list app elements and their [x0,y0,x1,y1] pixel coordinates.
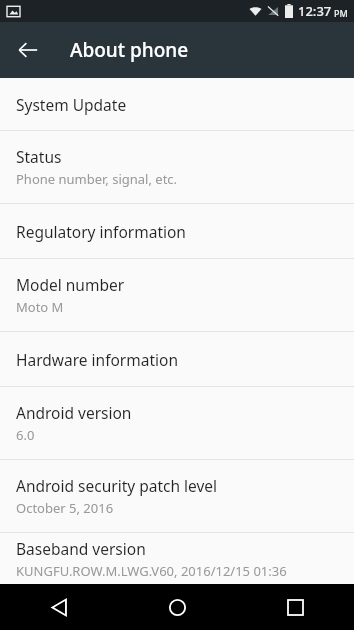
button[interactable]: Android security patch level [0,460,354,532]
staticText: Android security patch level [16,475,218,496]
staticText: Phone number, signal, etc. [16,170,178,188]
button[interactable]: Android version [0,387,354,459]
button[interactable]: Recent apps [236,584,354,630]
staticText: October 5, 2016 [16,499,114,517]
button[interactable]: Hardware information [0,332,354,386]
staticText: Hardware information [16,349,178,370]
button[interactable]: Regulatory information [0,204,354,258]
button[interactable]: Model number [0,259,354,331]
button[interactable]: Home [118,584,236,630]
staticText: KUNGFU.ROW.M.LWG.V60, 2016/12/15 01:36 [16,562,287,580]
staticText: System Update [16,94,127,115]
button[interactable]: Baseband version [0,533,354,584]
staticText: PM [334,7,348,19]
staticText: 12:37 [298,2,332,20]
staticText: Model number [16,274,125,295]
button[interactable]: Back [0,584,118,630]
staticText: Baseband version [16,538,146,559]
staticText: 6.0 [16,426,35,444]
button[interactable]: Status [0,131,354,203]
staticText: Regulatory information [16,221,186,242]
button[interactable]: Back [8,30,48,70]
staticText: About phone [70,37,189,63]
staticText: Status [16,146,62,167]
staticText: Android version [16,402,132,423]
staticText: Moto M [16,298,64,316]
button[interactable]: System Update [0,78,354,130]
